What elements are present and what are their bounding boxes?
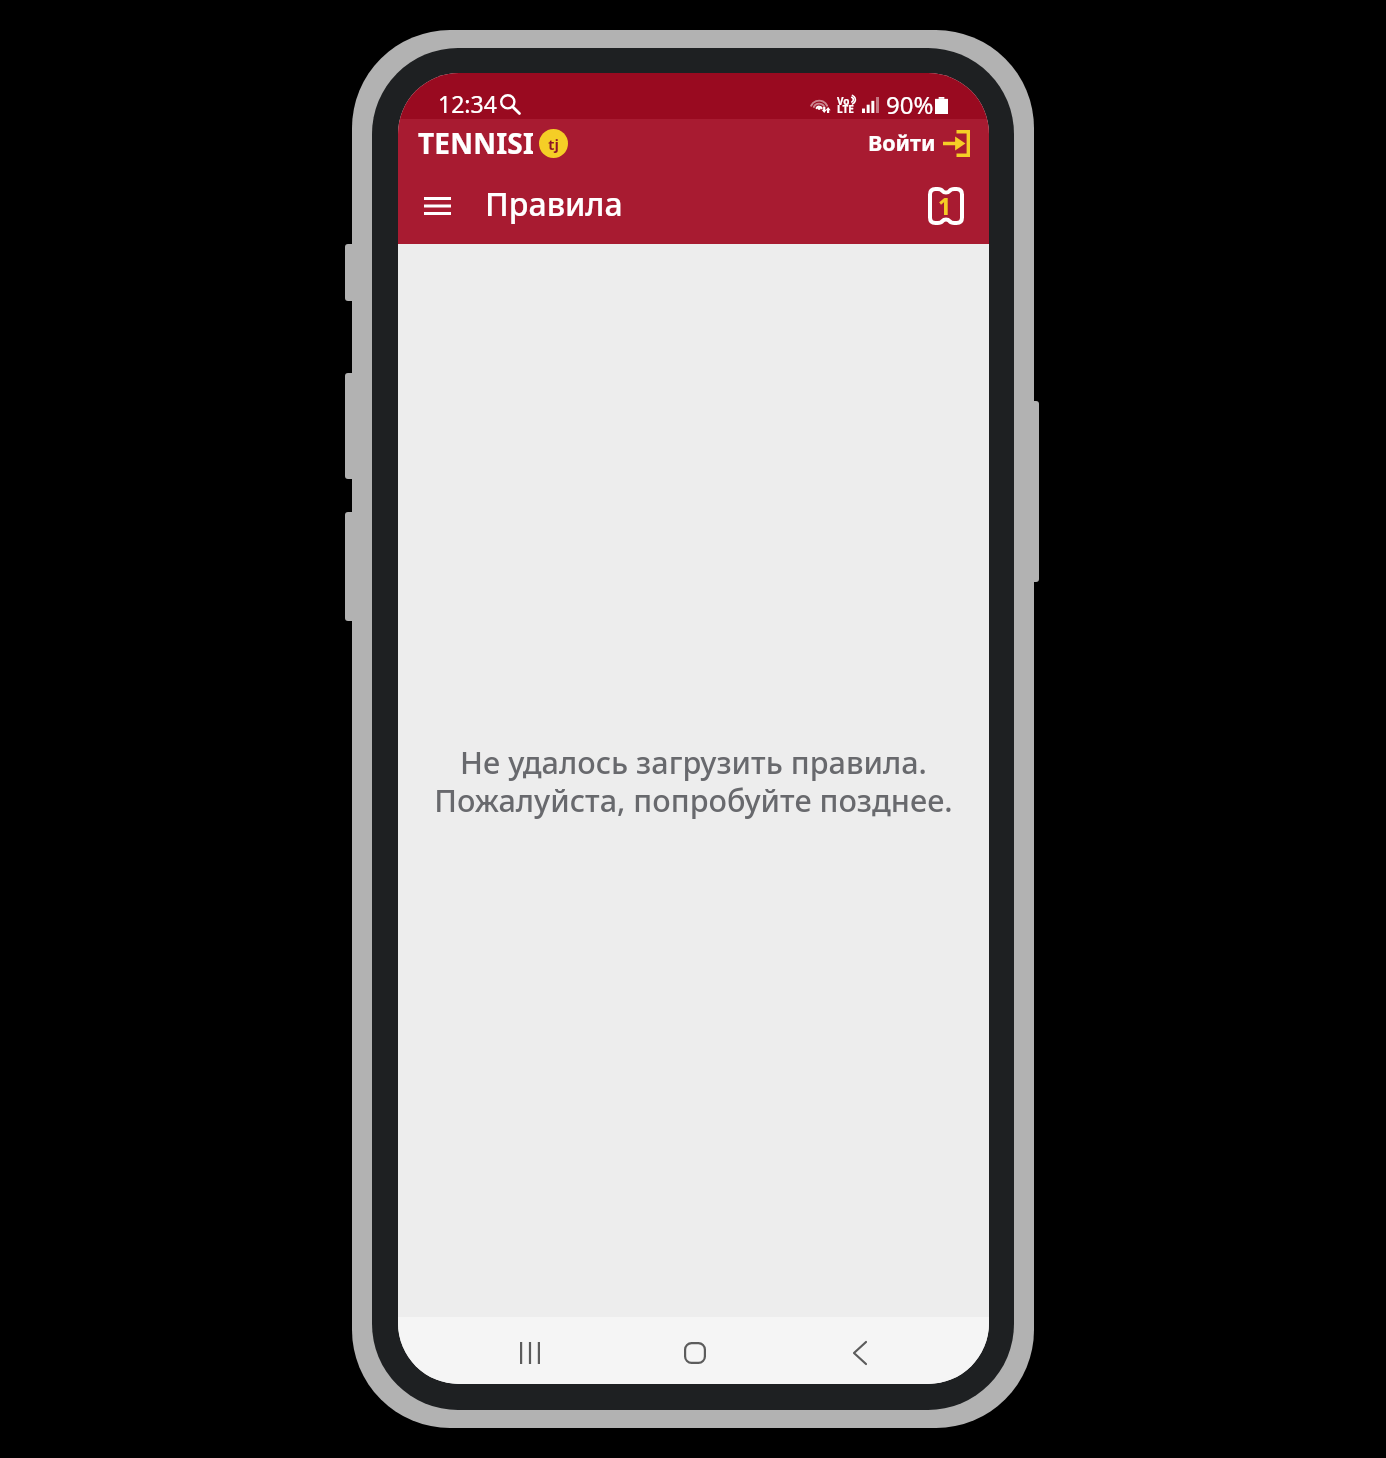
button[interactable]: Войти	[866, 125, 972, 162]
staticText: 12:34	[438, 88, 497, 119]
staticText: tj	[548, 134, 559, 154]
button[interactable]: Назад	[827, 1320, 892, 1384]
staticText: 90%	[886, 88, 934, 121]
button[interactable]: Недавние приложения	[497, 1320, 562, 1384]
staticText: LTE	[837, 102, 854, 116]
button[interactable]: Меню	[412, 181, 462, 231]
staticText: Не удалось загрузить правила. Пожалуйста…	[434, 741, 953, 821]
button[interactable]: Купон	[920, 180, 972, 232]
staticText: Войти	[868, 128, 936, 157]
staticText: Правила	[485, 182, 623, 226]
staticText: Vo	[837, 94, 850, 108]
button[interactable]: Главный экран	[662, 1320, 727, 1384]
staticText: 1	[938, 190, 952, 221]
staticText: TENNISI	[418, 124, 534, 162]
